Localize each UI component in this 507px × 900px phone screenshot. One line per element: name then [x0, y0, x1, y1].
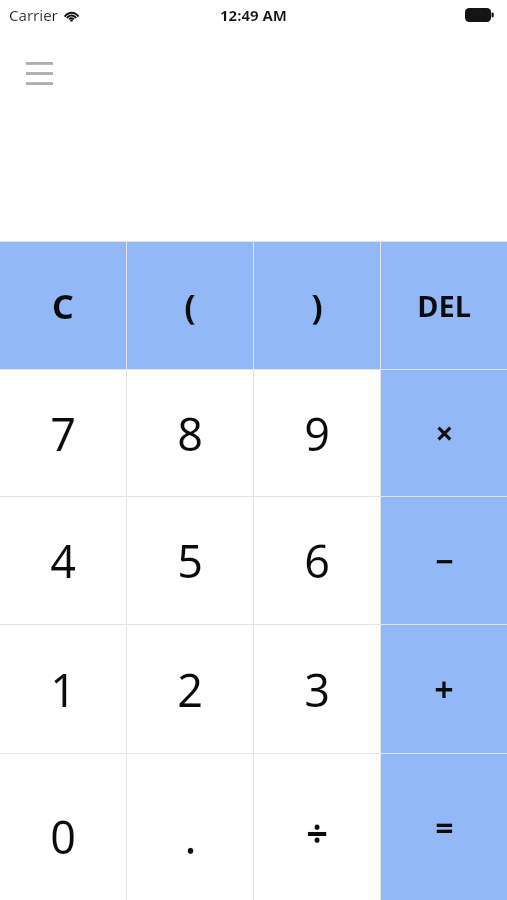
button[interactable]: 7 [0, 370, 126, 496]
staticText: 12:49 AM [220, 5, 287, 25]
staticText: 4 [50, 530, 76, 591]
staticText: . [184, 806, 197, 867]
button[interactable]: ÷ [254, 754, 380, 900]
staticText: ÷ [306, 806, 328, 858]
button[interactable]: 3 [254, 625, 380, 753]
staticText: 9 [304, 403, 330, 464]
button[interactable]: Menu [15, 54, 63, 92]
button[interactable]: DEL [381, 242, 507, 369]
button[interactable]: × [381, 370, 507, 496]
staticText: ) [311, 283, 323, 329]
button[interactable]: − [381, 497, 507, 624]
button[interactable]: 4 [0, 497, 126, 624]
button[interactable]: C [0, 242, 126, 369]
staticText: × [435, 411, 454, 455]
staticText: 2 [177, 659, 203, 720]
staticText: 8 [177, 403, 203, 464]
staticText: ( [184, 283, 196, 329]
button[interactable]: ( [127, 242, 253, 369]
button[interactable]: 6 [254, 497, 380, 624]
staticText: 1 [50, 659, 76, 720]
button[interactable]: 0 [0, 754, 126, 900]
staticText: + [434, 666, 454, 712]
staticText: 6 [304, 530, 330, 591]
staticText: 5 [177, 530, 203, 591]
staticText: 0 [50, 806, 76, 867]
button[interactable]: = [381, 754, 507, 900]
button[interactable]: 5 [127, 497, 253, 624]
button[interactable]: 1 [0, 625, 126, 753]
staticText: = [435, 806, 454, 850]
staticText: − [435, 539, 454, 583]
staticText: DEL [417, 286, 471, 325]
button[interactable]: 8 [127, 370, 253, 496]
button[interactable]: ) [254, 242, 380, 369]
staticText: 3 [304, 659, 330, 720]
button[interactable]: 9 [254, 370, 380, 496]
button[interactable]: + [381, 625, 507, 753]
staticText: 7 [50, 403, 76, 464]
button[interactable]: 2 [127, 625, 253, 753]
staticText: C [52, 283, 74, 329]
staticText: Carrier [9, 5, 58, 25]
button[interactable]: . [127, 754, 253, 900]
